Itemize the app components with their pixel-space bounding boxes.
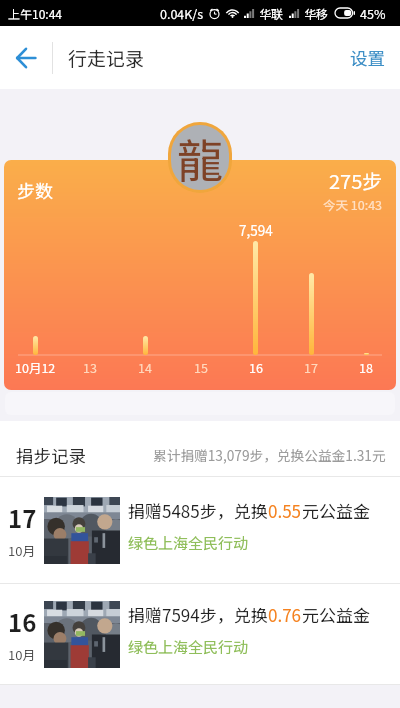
staticText: 捐步记录 [16,443,86,468]
staticText: 10月 [8,541,36,560]
staticText: 18 [359,358,373,376]
staticText: 绿色上海全民行动 [128,636,249,658]
staticText: 元公益金 [302,602,370,627]
staticText: 15 [194,358,208,376]
staticText: 行走记录 [68,44,145,72]
staticText: 华移 [304,5,329,22]
staticText: 0.55 [268,498,302,523]
staticText: 10月 [8,645,36,664]
staticText: 45% [360,4,386,22]
button[interactable]: Back [0,26,52,89]
staticText: 17 [304,358,318,376]
staticText: 上午10:44 [8,5,62,22]
staticText: 捐赠5485步，兑换 [128,498,268,523]
staticText: 275步 [329,166,383,195]
staticText: 设置 [350,45,385,70]
staticText: 17 [8,500,37,535]
staticText: 今天 10:43 [323,195,383,213]
staticText: 14 [138,358,152,376]
staticText: 16 [249,358,263,376]
staticText: 累计捐赠13,079步，兑换公益金1.31元 [153,445,386,465]
staticText: 13 [83,358,97,376]
button[interactable]: 16 [0,584,400,684]
staticText: 7,594 [239,220,273,240]
staticText: 元公益金 [302,498,370,523]
staticText: 0.04K/s [160,4,204,22]
staticText: 16 [8,604,37,639]
staticText: 步数 [17,177,53,203]
button[interactable]: 17 [0,477,400,583]
staticText: 捐赠7594步，兑换 [128,602,268,627]
staticText: 10月12 [15,358,56,376]
button[interactable]: 设置 [332,26,400,89]
staticText: 绿色上海全民行动 [128,532,249,554]
staticText: 华联 [259,5,284,22]
staticText: 龍 [177,125,223,190]
staticText: 0.76 [268,602,302,627]
